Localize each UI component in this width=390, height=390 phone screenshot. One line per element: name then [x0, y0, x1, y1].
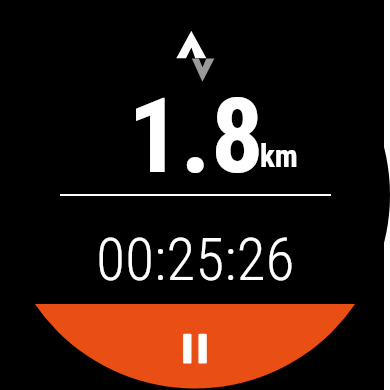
button[interactable]: Pause workout — [0, 0, 384, 390]
staticText: km — [260, 138, 298, 174]
staticText: 1.8 — [128, 76, 264, 198]
staticText: 00:25:26 — [96, 225, 295, 294]
